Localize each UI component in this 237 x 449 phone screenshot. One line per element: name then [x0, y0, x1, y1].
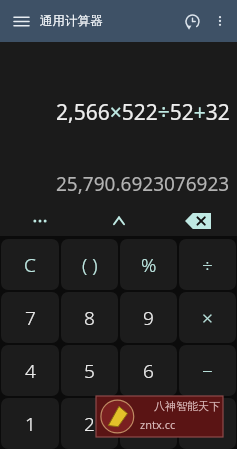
- button[interactable]: ( ): [61, 239, 118, 290]
- button[interactable]: 8: [61, 292, 118, 343]
- button[interactable]: +: [179, 398, 236, 449]
- staticText: ×: [202, 305, 213, 331]
- button[interactable]: Expand: [79, 206, 158, 236]
- button[interactable]: Backspace: [158, 206, 237, 236]
- staticText: 5: [84, 358, 95, 384]
- button[interactable]: 5: [61, 345, 118, 396]
- staticText: 25,790.6923076923: [56, 171, 230, 197]
- staticText: 7: [25, 305, 36, 331]
- staticText: 6: [143, 358, 154, 384]
- button[interactable]: 9: [120, 292, 177, 343]
- staticText: +: [202, 411, 213, 437]
- button[interactable]: 2: [61, 398, 118, 449]
- button[interactable]: More functions: [0, 206, 79, 236]
- button[interactable]: More options: [207, 8, 233, 34]
- button[interactable]: 7: [1, 292, 59, 343]
- staticText: %: [141, 252, 157, 278]
- staticText: 1: [25, 411, 36, 437]
- button[interactable]: %: [120, 239, 177, 290]
- staticText: 八神智能天下: [154, 399, 220, 413]
- button[interactable]: History: [177, 6, 207, 36]
- staticText: zntx.cc: [140, 417, 176, 432]
- staticText: 3: [143, 411, 154, 437]
- button[interactable]: −: [179, 345, 236, 396]
- staticText: 2,566×522÷52+32: [56, 98, 230, 127]
- button[interactable]: 6: [120, 345, 177, 396]
- staticText: C: [24, 252, 36, 278]
- staticText: 通用计算器: [40, 13, 103, 29]
- staticText: 4: [25, 358, 36, 384]
- button[interactable]: 4: [1, 345, 59, 396]
- staticText: ÷: [202, 252, 213, 278]
- button[interactable]: C: [1, 239, 59, 290]
- button[interactable]: 3: [120, 398, 177, 449]
- button[interactable]: ÷: [179, 239, 236, 290]
- staticText: 2: [84, 411, 95, 437]
- button[interactable]: 1: [1, 398, 59, 449]
- button[interactable]: Menu: [6, 6, 36, 36]
- staticText: 8: [84, 305, 95, 331]
- button[interactable]: ×: [179, 292, 236, 343]
- staticText: ( ): [82, 252, 98, 278]
- staticText: 9: [143, 305, 154, 331]
- staticText: −: [202, 358, 213, 384]
